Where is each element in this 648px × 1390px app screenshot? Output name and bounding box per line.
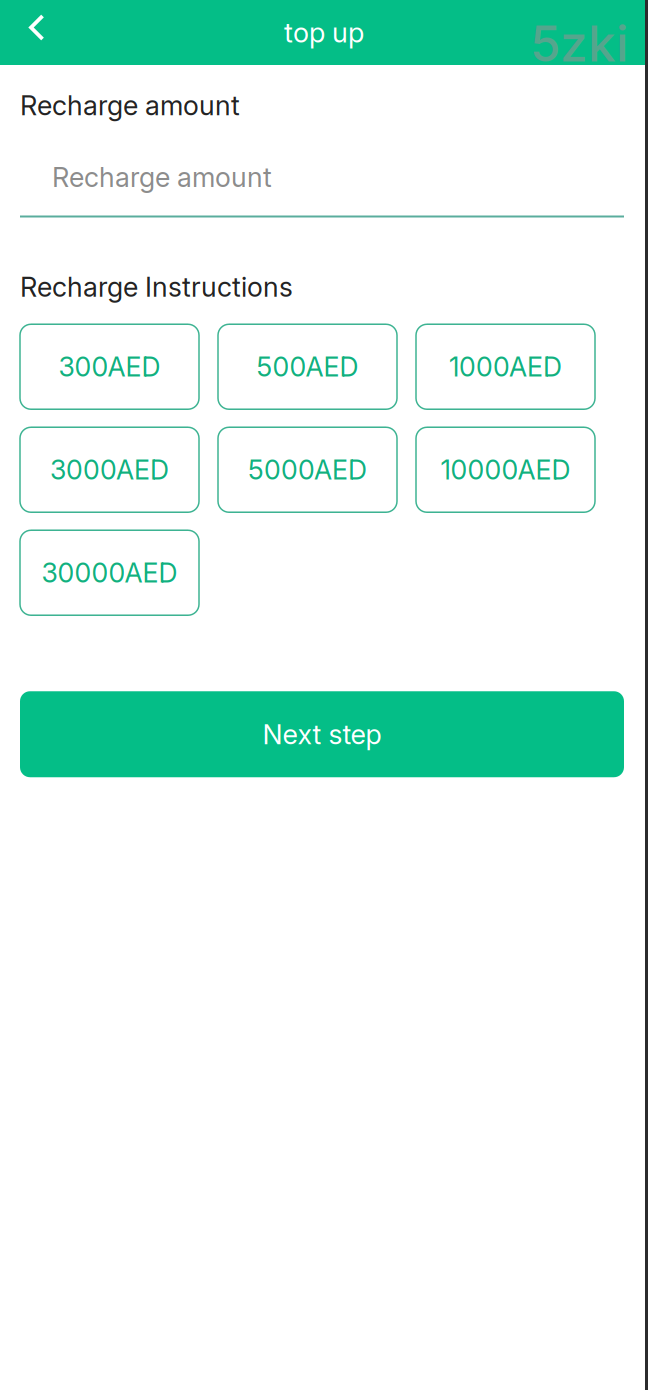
button[interactable]: 300AED <box>20 324 199 409</box>
button[interactable]: 500AED <box>218 324 397 409</box>
staticText: 30000AED <box>41 557 177 589</box>
button[interactable]: Next step <box>20 691 624 777</box>
button[interactable]: 30000AED <box>20 530 199 615</box>
staticText: 1000AED <box>449 351 562 383</box>
staticText: 5zki <box>530 14 628 73</box>
staticText: top up <box>284 16 364 49</box>
button[interactable]: 1000AED <box>416 324 595 409</box>
button[interactable]: Back <box>0 0 70 65</box>
staticText: 3000AED <box>50 454 169 486</box>
staticText: Recharge Instructions <box>20 270 293 303</box>
staticText: Recharge amount <box>52 161 272 193</box>
staticText: 5000AED <box>248 454 367 486</box>
button[interactable]: 10000AED <box>416 427 595 512</box>
staticText: Recharge amount <box>20 89 240 122</box>
staticText: 300AED <box>58 351 160 383</box>
button[interactable]: 5000AED <box>218 427 397 512</box>
staticText: 10000AED <box>440 454 570 486</box>
staticText: Next step <box>262 718 381 751</box>
button[interactable]: 3000AED <box>20 427 199 512</box>
staticText: 500AED <box>256 351 358 383</box>
